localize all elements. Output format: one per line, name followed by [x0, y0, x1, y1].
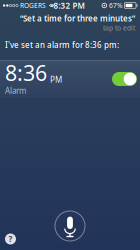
button[interactable]: tap to edit	[3, 23, 135, 33]
button[interactable]: Help	[0, 228, 21, 249]
staticText: Alarm	[5, 85, 26, 96]
staticText: 8:32 PM	[53, 0, 84, 11]
staticText: “Set a time for three minutes”	[20, 13, 135, 24]
staticText: tap to edit	[103, 24, 135, 32]
staticText: I've set an alarm for 8:36 pm:	[5, 40, 119, 50]
staticText: PM	[50, 74, 62, 85]
staticText: ROGERS	[18, 1, 46, 10]
staticText: ?	[8, 234, 12, 244]
staticText: 8:36	[5, 58, 47, 87]
button[interactable]: Talk to Siri	[49, 205, 91, 247]
staticText: 67%	[107, 1, 123, 10]
button[interactable]: 8:36	[0, 60, 140, 98]
